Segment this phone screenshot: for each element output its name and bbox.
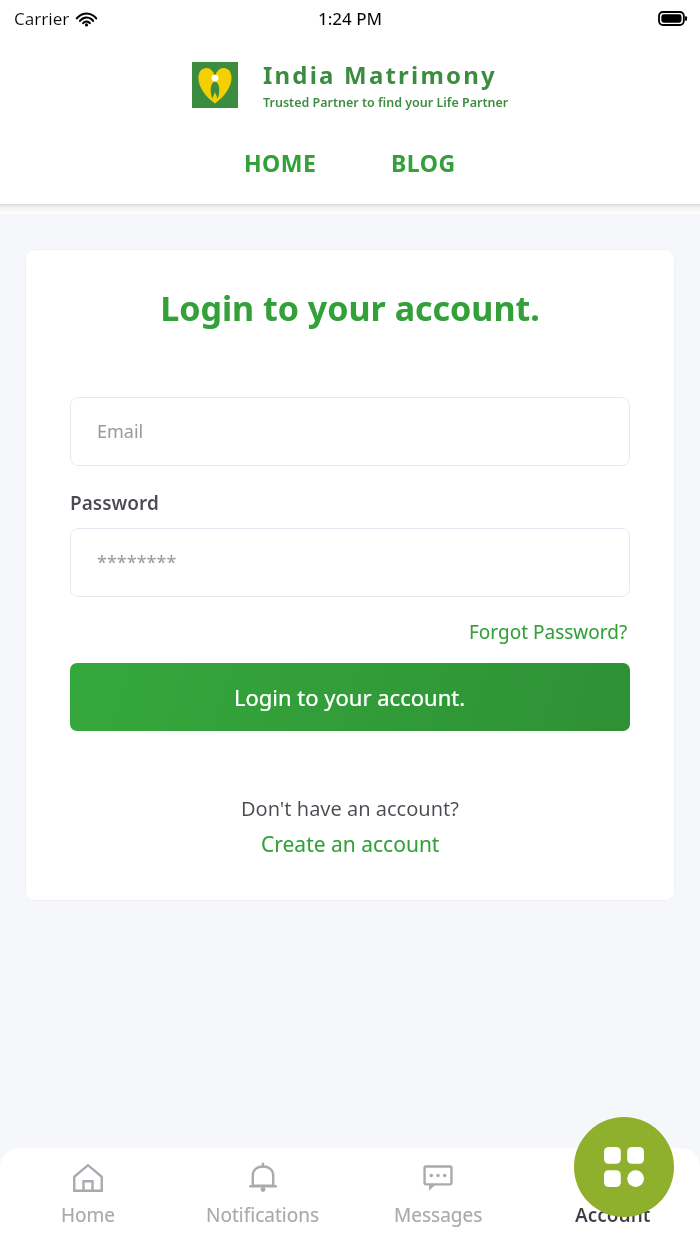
button[interactable]: Email [70, 397, 630, 466]
button[interactable]: Notifications [183, 1148, 343, 1228]
staticText: Home [61, 1202, 116, 1228]
staticText: India Matrimony [263, 58, 497, 91]
staticText: Trusted Partner to find your Life Partne… [263, 94, 509, 111]
staticText: BLOG [391, 147, 456, 178]
staticText: Password [70, 490, 159, 516]
staticText: Email [97, 419, 144, 444]
button[interactable]: Forgot Password? [467, 617, 630, 647]
button[interactable]: Login to your account. [70, 663, 630, 731]
staticText: Notifications [206, 1202, 320, 1228]
staticText: Account [575, 1202, 651, 1228]
button[interactable]: Account [533, 1148, 693, 1228]
staticText: Create an account [261, 830, 440, 859]
staticText: Login to your account. [234, 682, 466, 712]
staticText: 1:24 PM [318, 7, 383, 30]
button[interactable]: Home [8, 1148, 168, 1228]
button[interactable]: Create an account [259, 828, 442, 861]
button[interactable]: HOME [238, 143, 323, 182]
staticText: Carrier [14, 7, 70, 30]
button[interactable]: Messages [358, 1148, 518, 1228]
staticText: Forgot Password? [469, 619, 628, 645]
staticText: Don't have an account? [241, 795, 459, 822]
staticText: Login to your account. [160, 285, 540, 331]
staticText: HOME [244, 147, 317, 178]
staticText: ******** [97, 550, 177, 575]
button[interactable]: ******** [70, 528, 630, 597]
staticText: Messages [394, 1202, 483, 1228]
button[interactable]: BLOG [385, 143, 462, 182]
button[interactable]: Account [574, 1117, 674, 1217]
